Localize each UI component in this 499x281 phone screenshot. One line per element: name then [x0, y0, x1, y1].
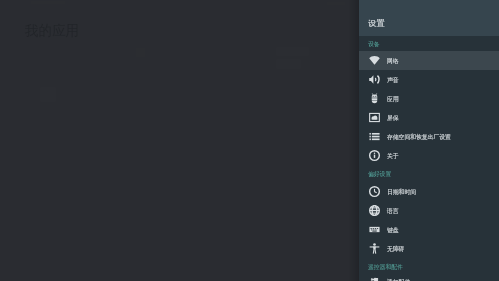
button[interactable]: 关于: [359, 146, 499, 165]
staticText: 屏保: [387, 114, 399, 121]
staticText: 关于: [387, 152, 399, 159]
button[interactable]: 无障碍: [359, 239, 499, 258]
staticText: 偏好设置: [368, 170, 392, 177]
button[interactable]: 应用: [359, 89, 499, 108]
staticText: 添加配件: [387, 278, 411, 281]
button[interactable]: 屏保: [359, 108, 499, 127]
staticText: 存储空间和恢复出厂设置: [387, 133, 451, 140]
staticText: 声音: [387, 76, 399, 83]
button[interactable]: 存储空间和恢复出厂设置: [359, 127, 499, 146]
staticText: 无障碍: [387, 245, 405, 252]
button[interactable]: 添加配件: [359, 278, 499, 281]
staticText: 日期和时间: [387, 188, 416, 195]
staticText: 遥控器和配件: [368, 263, 403, 270]
button[interactable]: 网络: [359, 51, 499, 70]
button[interactable]: 语言: [359, 201, 499, 220]
staticText: 设置: [368, 18, 385, 28]
staticText: 键盘: [387, 226, 399, 233]
button[interactable]: 日期和时间: [359, 182, 499, 201]
button[interactable]: 键盘: [359, 220, 499, 239]
staticText: 设备: [368, 40, 380, 47]
staticText: 应用: [387, 95, 399, 102]
staticText: 网络: [387, 57, 399, 64]
staticText: 语言: [387, 207, 399, 214]
button[interactable]: 声音: [359, 70, 499, 89]
